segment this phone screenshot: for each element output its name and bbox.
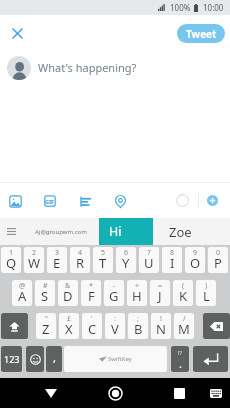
staticText: Aj@groupwm.com bbox=[35, 228, 87, 236]
button[interactable]: - bbox=[104, 280, 124, 306]
button[interactable]: " bbox=[36, 313, 56, 339]
staticText: / bbox=[183, 314, 186, 324]
button[interactable]: ' bbox=[82, 313, 102, 339]
staticText: ) bbox=[205, 281, 208, 291]
button[interactable]: 9 bbox=[185, 247, 205, 273]
staticText: P bbox=[214, 254, 222, 272]
staticText: S bbox=[41, 287, 49, 305]
button[interactable]: 6 bbox=[116, 247, 136, 273]
button[interactable]: Poll bbox=[77, 193, 93, 209]
staticText: G bbox=[109, 287, 119, 305]
button[interactable]: 3 bbox=[47, 247, 67, 273]
staticText: # bbox=[43, 281, 48, 291]
button[interactable]: Tweet bbox=[177, 24, 225, 43]
button[interactable]: Emoji bbox=[26, 346, 44, 372]
staticText: 9 bbox=[193, 248, 198, 258]
staticText: * bbox=[89, 281, 93, 291]
staticText: SwiftKey bbox=[108, 355, 132, 363]
staticText: 10:00 bbox=[203, 2, 224, 13]
button[interactable]: Enter bbox=[193, 346, 228, 372]
button[interactable]: Home bbox=[97, 378, 133, 408]
button[interactable]: 7 bbox=[139, 247, 159, 273]
button[interactable]: 123 bbox=[1, 346, 22, 372]
staticText: H bbox=[132, 287, 142, 305]
staticText: O bbox=[190, 254, 201, 272]
button[interactable]: ) bbox=[196, 280, 216, 306]
button[interactable]: & bbox=[58, 280, 78, 306]
staticText: , bbox=[53, 350, 56, 365]
staticText: : bbox=[114, 314, 116, 324]
button[interactable]: Add tweet bbox=[207, 195, 218, 206]
staticText: !? bbox=[178, 349, 183, 357]
staticText: GIF bbox=[45, 198, 55, 205]
button[interactable]: ! bbox=[151, 313, 171, 339]
button[interactable]: : bbox=[105, 313, 125, 339]
staticText: - bbox=[113, 281, 116, 291]
button[interactable]: # bbox=[35, 280, 55, 306]
button[interactable]: 0 bbox=[208, 247, 228, 273]
staticText: Hi bbox=[109, 223, 122, 240]
staticText: J bbox=[158, 287, 162, 305]
staticText: R bbox=[76, 254, 85, 272]
button[interactable]: Close bbox=[7, 23, 28, 44]
button[interactable]: Location bbox=[112, 193, 128, 209]
button[interactable]: Add GIF bbox=[42, 193, 58, 209]
staticText: 5 bbox=[101, 248, 106, 258]
staticText: D bbox=[63, 287, 73, 305]
button[interactable]: Hi bbox=[99, 218, 132, 245]
staticText: F bbox=[88, 287, 95, 305]
staticText: 7 bbox=[147, 248, 152, 258]
button[interactable]: Menu bbox=[0, 218, 22, 245]
button[interactable]: / bbox=[174, 313, 194, 339]
button[interactable] bbox=[99, 218, 153, 245]
staticText: & bbox=[65, 281, 71, 291]
button[interactable]: 5 bbox=[93, 247, 113, 273]
button[interactable]: ; bbox=[128, 313, 148, 339]
button[interactable]: , bbox=[46, 346, 62, 372]
staticText: Q bbox=[6, 254, 17, 272]
staticText: + bbox=[135, 281, 140, 291]
button[interactable]: 4 bbox=[70, 247, 90, 273]
button[interactable]: !? bbox=[171, 346, 189, 372]
staticText: ! bbox=[160, 314, 162, 324]
staticText: E bbox=[53, 254, 61, 272]
staticText: What's happening? bbox=[38, 60, 137, 75]
staticText: ( bbox=[182, 281, 185, 291]
staticText: 0 bbox=[216, 248, 221, 258]
button[interactable]: = bbox=[150, 280, 170, 306]
staticText: I bbox=[170, 254, 175, 272]
button[interactable]: 8 bbox=[162, 247, 182, 273]
staticText: V bbox=[111, 320, 119, 338]
button[interactable]: Recents bbox=[161, 378, 197, 408]
button[interactable]: 1 bbox=[1, 247, 21, 273]
staticText: B bbox=[134, 320, 143, 338]
button[interactable]: Back bbox=[33, 378, 69, 408]
staticText: L bbox=[203, 287, 210, 305]
staticText: Zoe bbox=[169, 223, 192, 241]
button[interactable]: Space bbox=[64, 346, 167, 372]
button[interactable]: + bbox=[127, 280, 147, 306]
button[interactable]: Aj@groupwm.com bbox=[22, 218, 99, 245]
button[interactable]: ( bbox=[173, 280, 193, 306]
staticText: @ bbox=[19, 281, 26, 291]
staticText: " bbox=[45, 314, 48, 324]
button[interactable]: 2 bbox=[24, 247, 44, 273]
staticText: Z bbox=[42, 320, 50, 338]
staticText: 6 bbox=[124, 248, 129, 258]
staticText: C bbox=[88, 320, 97, 338]
button[interactable]: Zoe bbox=[152, 218, 208, 245]
button[interactable]: * bbox=[81, 280, 101, 306]
staticText: A bbox=[18, 287, 27, 305]
button[interactable]: @ bbox=[12, 280, 32, 306]
staticText: W bbox=[28, 254, 41, 272]
staticText: 100% bbox=[170, 2, 191, 13]
staticText: 8 bbox=[170, 248, 175, 258]
button[interactable]: Backspace bbox=[203, 313, 230, 339]
staticText: £ bbox=[67, 314, 72, 324]
button[interactable]: Keyboard bbox=[201, 378, 230, 408]
staticText: ; bbox=[137, 314, 139, 324]
button[interactable]: £ bbox=[59, 313, 79, 339]
button[interactable]: Shift bbox=[1, 313, 28, 339]
staticText: . bbox=[179, 356, 182, 371]
button[interactable]: Add photo bbox=[7, 193, 23, 209]
